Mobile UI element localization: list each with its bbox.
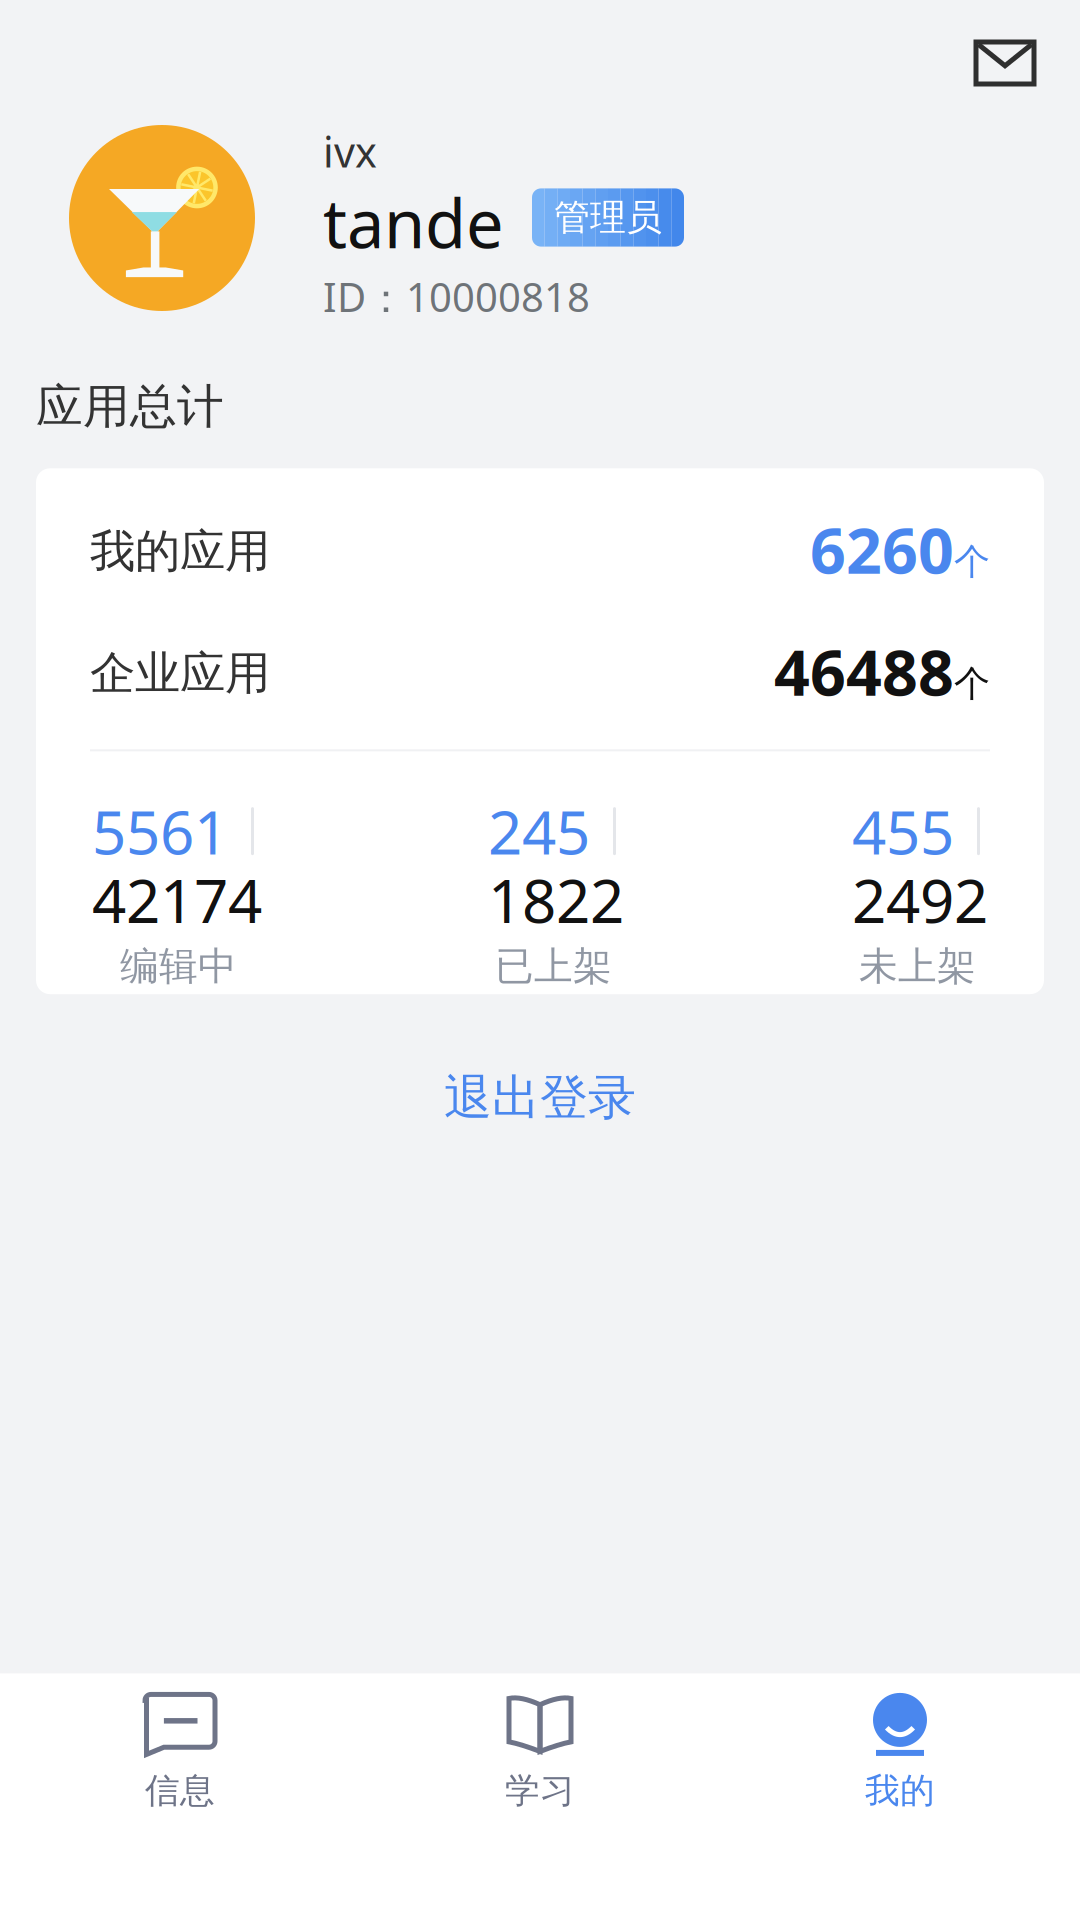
- staticText: 1822: [488, 860, 624, 940]
- staticText: 信息: [145, 1769, 215, 1812]
- staticText: 455: [852, 791, 954, 871]
- button[interactable]: 退出登录: [400, 1046, 680, 1149]
- staticText: tande: [323, 178, 504, 267]
- staticText: 42174: [92, 860, 262, 940]
- staticText: 个: [954, 661, 990, 706]
- staticText: 46488: [774, 630, 954, 713]
- staticText: 5561: [92, 791, 228, 871]
- staticText: 245: [488, 791, 590, 871]
- staticText: 管理员: [554, 195, 662, 240]
- staticText: 2492: [852, 860, 988, 940]
- staticText: 应用总计: [36, 378, 224, 435]
- staticText: ID：10000818: [323, 270, 590, 323]
- staticText: 企业应用: [90, 645, 270, 701]
- staticText: 编辑中: [120, 943, 237, 990]
- button[interactable]: 信息: [0, 1693, 360, 1812]
- staticText: 未上架: [859, 943, 976, 990]
- staticText: 我的: [865, 1769, 935, 1812]
- staticText: 已上架: [495, 943, 612, 990]
- button[interactable]: 学习: [360, 1693, 720, 1812]
- button[interactable]: Messages: [944, 0, 1080, 106]
- staticText: 学习: [505, 1769, 575, 1812]
- staticText: ivx: [323, 124, 377, 179]
- staticText: 我的应用: [90, 523, 270, 579]
- staticText: 个: [954, 539, 990, 584]
- staticText: 退出登录: [444, 1068, 636, 1127]
- staticText: 6260: [810, 508, 954, 591]
- button[interactable]: 我的: [720, 1693, 1080, 1812]
